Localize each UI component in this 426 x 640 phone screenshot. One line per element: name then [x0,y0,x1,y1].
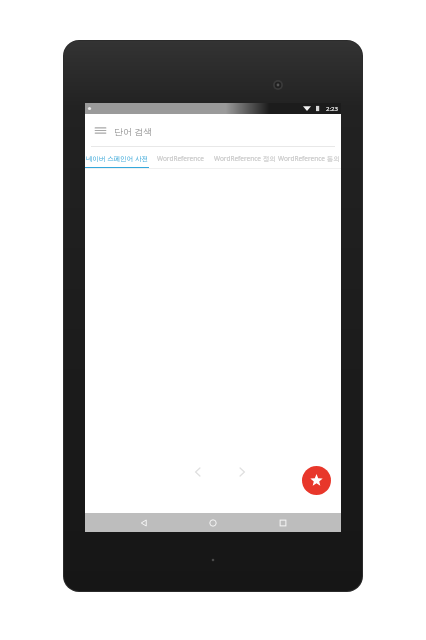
staticText: 네이버 스페인어 사전 [86,154,148,163]
button[interactable]: Back [133,513,155,532]
button[interactable]: WordReference [149,147,213,169]
button[interactable]: WordReference 정의 [213,147,277,169]
button[interactable]: Next [229,459,255,485]
staticText: WordReference [157,154,205,163]
staticText: WordReference 정의 [214,154,276,163]
button[interactable]: Previous [185,459,211,485]
button[interactable]: Home [202,513,224,532]
button[interactable]: 네이버 스페인어 사전 [85,147,149,169]
staticText: WordReference 동의 [278,154,340,163]
button[interactable]: Recents [272,513,294,532]
staticText: 2:23 [326,105,338,113]
staticText: 단어 검색 [114,125,153,137]
button[interactable]: 단어 검색 [85,114,341,147]
button[interactable]: WordReference 동의 [277,147,341,169]
button[interactable]: Favorites [302,466,331,495]
